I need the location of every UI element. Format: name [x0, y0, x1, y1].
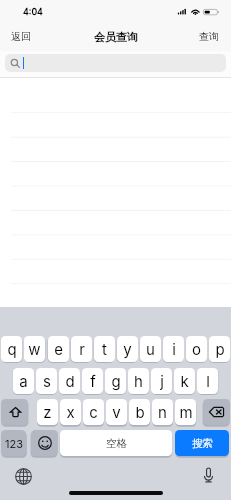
staticText: d: [65, 372, 75, 390]
staticText: 会员查询: [94, 30, 138, 44]
staticText: k: [180, 372, 189, 390]
staticText: x: [66, 403, 75, 421]
staticText: 4:04: [23, 6, 43, 17]
staticText: e: [54, 340, 63, 358]
button[interactable]: Shift: [1, 399, 28, 425]
staticText: w: [28, 340, 41, 358]
button[interactable]: Dictation: [199, 466, 218, 485]
staticText: z: [43, 403, 52, 421]
staticText: y: [123, 340, 132, 358]
staticText: l: [206, 372, 210, 390]
staticText: s: [43, 372, 51, 390]
staticText: p: [215, 340, 225, 358]
staticText: 返回: [11, 30, 31, 43]
button[interactable]: [5, 54, 226, 72]
button[interactable]: v: [106, 399, 127, 425]
button[interactable]: e: [48, 336, 69, 362]
button[interactable]: o: [186, 336, 207, 362]
button[interactable]: l: [197, 368, 218, 394]
staticText: c: [89, 403, 98, 421]
staticText: u: [146, 340, 155, 358]
button[interactable]: Numbers and symbols: [1, 430, 26, 456]
staticText: o: [192, 340, 201, 358]
button[interactable]: Emoji: [31, 430, 58, 456]
button[interactable]: h: [128, 368, 149, 394]
button[interactable]: t: [94, 336, 115, 362]
button[interactable]: j: [151, 368, 172, 394]
button[interactable]: a: [13, 368, 34, 394]
button[interactable]: 空格: [60, 430, 172, 456]
button[interactable]: q: [1, 336, 22, 362]
button[interactable]: z: [37, 399, 58, 425]
staticText: 123: [5, 437, 23, 450]
button[interactable]: n: [152, 399, 173, 425]
button[interactable]: u: [140, 336, 161, 362]
staticText: t: [102, 340, 107, 358]
staticText: n: [158, 403, 167, 421]
button[interactable]: Next keyboard: [14, 467, 33, 486]
button[interactable]: 查询: [190, 26, 231, 47]
staticText: q: [7, 340, 17, 358]
staticText: b: [135, 403, 145, 421]
button[interactable]: 搜索: [175, 430, 229, 456]
button[interactable]: w: [24, 336, 45, 362]
button[interactable]: m: [175, 399, 196, 425]
button[interactable]: y: [117, 336, 138, 362]
button[interactable]: x: [60, 399, 81, 425]
staticText: 空格: [106, 437, 127, 450]
button[interactable]: Backspace: [203, 399, 230, 425]
staticText: v: [112, 403, 121, 421]
staticText: 搜索: [192, 437, 213, 450]
staticText: g: [111, 372, 121, 390]
staticText: j: [160, 372, 164, 390]
staticText: r: [79, 340, 85, 358]
staticText: 查询: [199, 30, 219, 43]
button[interactable]: 返回: [0, 26, 40, 47]
button[interactable]: f: [82, 368, 103, 394]
button[interactable]: c: [83, 399, 104, 425]
button[interactable]: i: [163, 336, 184, 362]
button[interactable]: p: [209, 336, 230, 362]
button[interactable]: s: [36, 368, 57, 394]
button[interactable]: d: [59, 368, 80, 394]
button[interactable]: k: [174, 368, 195, 394]
staticText: h: [134, 372, 143, 390]
staticText: f: [90, 372, 96, 390]
staticText: a: [19, 372, 28, 390]
button[interactable]: b: [129, 399, 150, 425]
button[interactable]: g: [105, 368, 126, 394]
staticText: i: [172, 340, 176, 358]
staticText: m: [179, 403, 193, 421]
button[interactable]: r: [71, 336, 92, 362]
